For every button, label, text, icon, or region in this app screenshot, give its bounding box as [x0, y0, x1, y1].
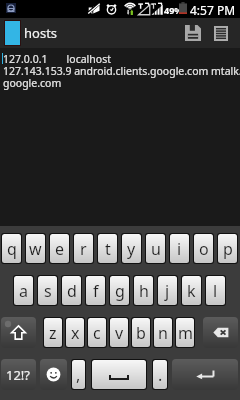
staticText: y [127, 238, 136, 260]
staticText: 12!? [6, 366, 31, 384]
staticText: l [213, 280, 218, 302]
staticText: . [158, 364, 163, 386]
button[interactable]: y [122, 234, 141, 263]
staticText: d [67, 280, 77, 302]
button[interactable]: q [2, 234, 21, 263]
button[interactable]: u [146, 234, 165, 263]
staticText: b [136, 322, 146, 344]
button[interactable]: Menu [208, 18, 234, 48]
staticText: google.com [3, 76, 62, 90]
button[interactable]: Emoji [40, 359, 67, 390]
staticText: v [115, 322, 124, 344]
staticText: m [178, 322, 193, 344]
button[interactable]: i [170, 234, 189, 263]
staticText: e [55, 238, 65, 260]
button[interactable]: n [154, 318, 172, 347]
button[interactable]: o [194, 234, 213, 263]
button[interactable]: d [62, 276, 81, 305]
staticText: j [165, 280, 170, 302]
staticText: w [29, 238, 42, 260]
staticText: 4:57 PM [190, 2, 236, 18]
button[interactable]: a [14, 276, 33, 305]
staticText: k [187, 280, 196, 302]
staticText: s [44, 280, 52, 302]
button[interactable]: Backspace [203, 317, 238, 348]
staticText: f [93, 280, 99, 302]
staticText: o [199, 238, 209, 260]
button[interactable]: l [206, 276, 225, 305]
button[interactable]: j [158, 276, 177, 305]
staticText: c [93, 322, 101, 344]
staticText: a [19, 280, 28, 302]
button[interactable]: c [88, 318, 106, 347]
staticText: 127.143.153.9 android.clients.google.com… [3, 64, 240, 78]
staticText: 49% [164, 4, 183, 16]
button[interactable]: t [98, 234, 117, 263]
staticText: q [7, 238, 17, 260]
button[interactable]: s [38, 276, 57, 305]
button[interactable]: k [182, 276, 201, 305]
button[interactable]: v [110, 318, 128, 347]
button[interactable]: Shift [1, 317, 36, 348]
staticText: t [105, 238, 111, 260]
button[interactable]: m [176, 318, 194, 347]
button[interactable] [92, 360, 146, 389]
button[interactable]: b [132, 318, 150, 347]
staticText: u [151, 238, 161, 260]
staticText: i [177, 238, 182, 260]
staticText: p [223, 238, 233, 260]
button[interactable]: Symbols [1, 359, 36, 390]
button[interactable]: Enter [172, 359, 238, 390]
button[interactable]: , [72, 360, 85, 389]
staticText: 127.0.0.1 localhost [3, 52, 111, 66]
button[interactable]: p [218, 234, 237, 263]
button[interactable]: Save [178, 18, 208, 48]
staticText: h [139, 280, 149, 302]
staticText: n [158, 322, 168, 344]
button[interactable]: r [74, 234, 93, 263]
staticText: r [80, 238, 87, 260]
button[interactable]: z [44, 318, 62, 347]
button[interactable]: g [110, 276, 129, 305]
button[interactable]: w [26, 234, 45, 263]
button[interactable]: e [50, 234, 69, 263]
staticText: , [76, 364, 81, 386]
staticText: g [115, 280, 125, 302]
button[interactable]: . [153, 360, 167, 389]
button[interactable]: h [134, 276, 153, 305]
staticText: z [49, 322, 57, 344]
button[interactable]: f [86, 276, 105, 305]
button[interactable]: x [66, 318, 84, 347]
staticText: hosts [24, 24, 58, 42]
staticText: x [71, 322, 80, 344]
